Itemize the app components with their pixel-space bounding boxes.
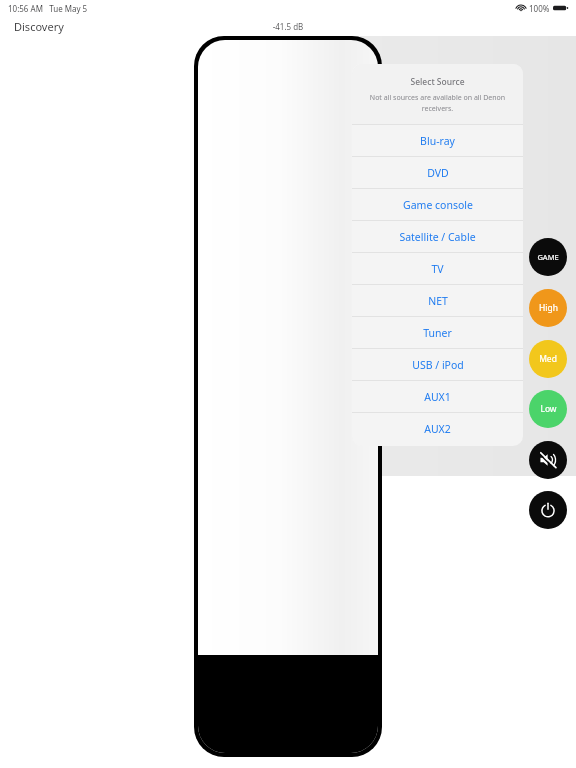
button[interactable]: GAME: [529, 238, 567, 276]
staticText: Discovery: [14, 19, 64, 34]
button[interactable]: Blu-ray: [352, 125, 523, 156]
staticText: USB / iPod: [412, 358, 464, 372]
button[interactable]: DVD: [352, 157, 523, 188]
button[interactable]: TV: [352, 253, 523, 284]
staticText: Satellite / Cable: [399, 230, 476, 244]
staticText: 10:56 AM Tue May 5: [8, 3, 88, 14]
button[interactable]: USB / iPod: [352, 349, 523, 380]
button[interactable]: AUX1: [352, 381, 523, 412]
staticText: NET: [428, 294, 448, 308]
staticText: DVD: [427, 166, 449, 180]
button[interactable]: Low: [529, 390, 567, 428]
button[interactable]: High: [529, 289, 567, 327]
staticText: 100%: [529, 3, 550, 14]
staticText: AUX1: [424, 390, 451, 404]
button[interactable]: NET: [352, 285, 523, 316]
button[interactable]: Satellite / Cable: [352, 221, 523, 252]
staticText: Not all sources are available on all Den…: [362, 93, 513, 113]
staticText: Tuner: [423, 326, 452, 340]
button[interactable]: Med: [529, 340, 567, 378]
button[interactable]: [194, 36, 382, 757]
staticText: Select Source: [410, 76, 465, 88]
staticText: Low: [540, 403, 557, 415]
staticText: AUX2: [424, 422, 451, 436]
staticText: -41.5 dB: [255, 21, 321, 32]
staticText: Blu-ray: [420, 134, 455, 148]
staticText: High: [539, 302, 558, 314]
button[interactable]: Mute: [529, 441, 567, 479]
staticText: Game console: [403, 198, 473, 212]
button[interactable]: AUX2: [352, 413, 523, 444]
staticText: Med: [539, 353, 557, 365]
staticText: TV: [431, 262, 444, 276]
button[interactable]: Power: [529, 491, 567, 529]
staticText: GAME: [537, 252, 559, 262]
button[interactable]: Game console: [352, 189, 523, 220]
button[interactable]: Tuner: [352, 317, 523, 348]
